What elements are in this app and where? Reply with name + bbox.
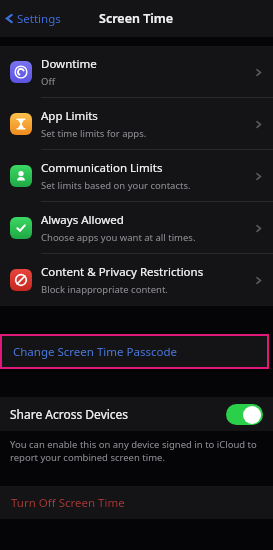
button[interactable]: Turn Off Screen Time bbox=[0, 486, 273, 519]
staticText: Block inappropriate content. bbox=[41, 283, 168, 296]
button[interactable]: Share Across Devices toggle, on bbox=[226, 404, 263, 425]
staticText: Always Allowed bbox=[41, 212, 124, 228]
staticText: Turn Off Screen Time bbox=[11, 495, 125, 511]
staticText: App Limits bbox=[41, 108, 98, 124]
button[interactable]: Share Across Devices bbox=[0, 397, 273, 431]
staticText: Set time limits for apps. bbox=[41, 127, 147, 140]
staticText: Communication Limits bbox=[41, 160, 163, 176]
staticText: Choose apps you want at all times. bbox=[41, 231, 196, 244]
button[interactable]: Change Screen Time Passcode bbox=[0, 334, 269, 369]
staticText: Downtime bbox=[41, 56, 97, 72]
staticText: Set limits based on your contacts. bbox=[41, 179, 191, 192]
staticText: Screen Time bbox=[99, 10, 174, 27]
button[interactable]: Always Allowed bbox=[0, 202, 273, 254]
staticText: You can enable this on any device signed… bbox=[10, 438, 263, 464]
button[interactable]: Communication Limits bbox=[0, 150, 273, 202]
button[interactable]: Content & Privacy Restrictions bbox=[0, 254, 273, 306]
button[interactable]: App Limits bbox=[0, 98, 273, 150]
button[interactable]: Settings bbox=[0, 0, 69, 37]
staticText: Off bbox=[41, 75, 55, 88]
button[interactable]: Downtime bbox=[0, 46, 273, 98]
staticText: Settings bbox=[17, 11, 61, 27]
staticText: Content & Privacy Restrictions bbox=[41, 264, 204, 280]
staticText: Change Screen Time Passcode bbox=[13, 344, 177, 360]
staticText: Share Across Devices bbox=[10, 406, 226, 422]
